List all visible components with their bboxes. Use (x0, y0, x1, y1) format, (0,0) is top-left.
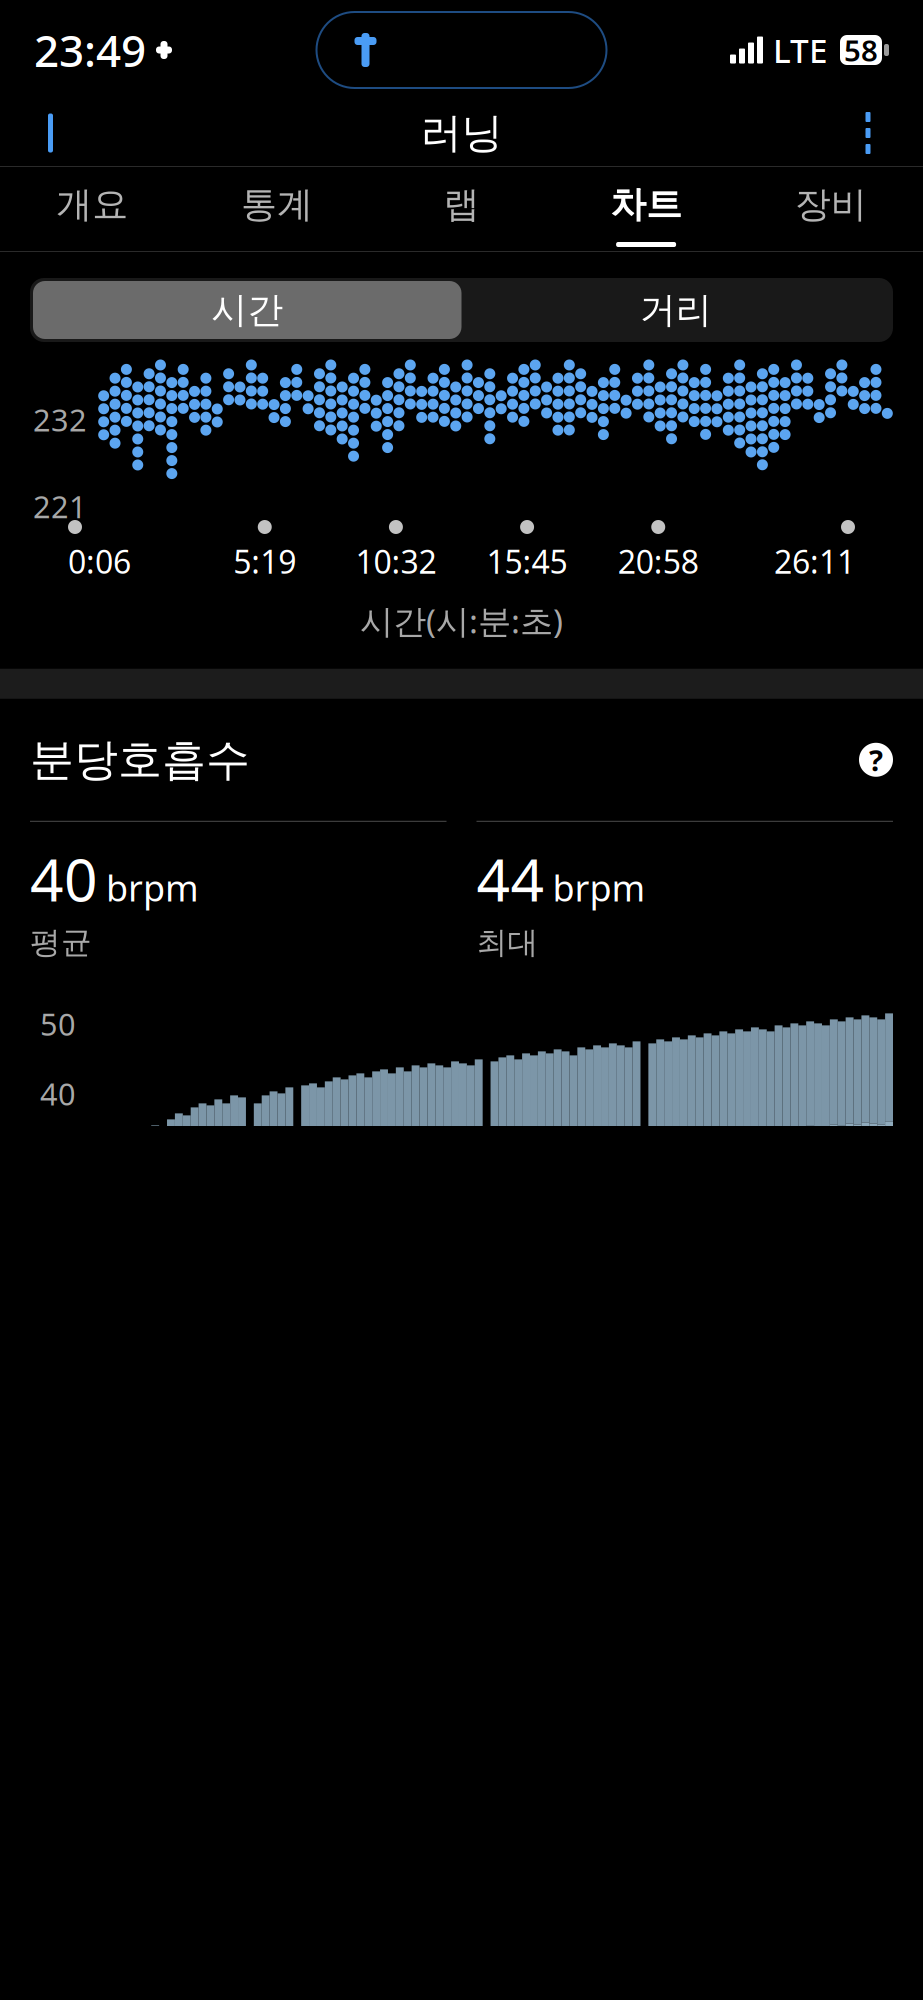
staticText: 평균 (30, 924, 92, 961)
button[interactable]: Back (20, 101, 90, 165)
staticText: 10:32 (355, 540, 436, 582)
staticText: 58 (844, 30, 878, 69)
button[interactable]: Help about breaths per minute (859, 740, 893, 779)
staticText: 거리 (640, 288, 712, 332)
staticText: 랩 (443, 182, 479, 227)
button[interactable]: 장비 (738, 167, 923, 251)
staticText: 40 (30, 840, 98, 918)
button[interactable]: 거리 (461, 281, 890, 339)
staticText: 40 (40, 1073, 76, 1114)
staticText: 44 (476, 840, 544, 918)
staticText: 221 (33, 486, 87, 527)
staticText: 0:06 (68, 540, 131, 582)
staticText: 러닝 (420, 108, 502, 158)
staticText: brpm (106, 864, 199, 911)
button[interactable]: 랩 (369, 167, 554, 251)
staticText: 최대 (476, 924, 538, 961)
staticText: 차트 (610, 182, 682, 227)
staticText: 개요 (56, 182, 128, 227)
staticText: ? (869, 740, 883, 779)
staticText: 분당호흡수 (30, 733, 250, 787)
staticText: 232 (33, 399, 87, 440)
staticText: 장비 (795, 182, 867, 227)
staticText: 23:49 (34, 21, 146, 79)
staticText: 5:19 (233, 540, 296, 582)
staticText: 시간 (211, 288, 283, 332)
staticText: 시간(시:분:초) (360, 598, 563, 643)
staticText: 26:11 (774, 540, 855, 582)
button[interactable]: 통계 (185, 167, 369, 251)
staticText: 20:58 (618, 540, 699, 582)
staticText: LTE (773, 28, 828, 72)
button[interactable]: 차트 (554, 167, 738, 251)
button[interactable]: More options (833, 101, 903, 165)
staticText: 50 (40, 1003, 76, 1044)
staticText: 통계 (241, 182, 313, 227)
button[interactable]: 시간 (33, 281, 461, 339)
staticText: 15:45 (487, 540, 568, 582)
staticText: brpm (552, 864, 645, 911)
button[interactable]: 개요 (0, 167, 185, 251)
